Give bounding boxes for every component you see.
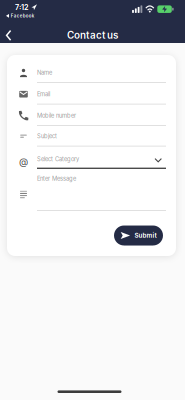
staticText: Name	[37, 69, 52, 76]
staticText: @	[19, 156, 28, 168]
staticText: Mobile number	[37, 112, 76, 119]
staticText: Subject	[37, 133, 57, 140]
button[interactable]: Subject	[7, 126, 176, 146]
staticText: Submit	[134, 232, 156, 239]
button[interactable]: Enter Message	[7, 169, 176, 211]
button[interactable]	[0, 30, 12, 41]
staticText: Select Category	[37, 156, 79, 163]
staticText: Facebook	[11, 13, 35, 19]
button[interactable]: Name	[7, 55, 176, 83]
button[interactable]: @	[7, 146, 176, 169]
staticText: 7:12	[15, 3, 29, 12]
staticText: Contact us	[67, 29, 118, 41]
button[interactable]: Submit	[114, 225, 163, 245]
button[interactable]: Mobile number	[7, 104, 176, 126]
button[interactable]: Email	[7, 83, 176, 104]
staticText: Enter Message	[37, 175, 76, 182]
staticText: Email	[37, 91, 50, 98]
